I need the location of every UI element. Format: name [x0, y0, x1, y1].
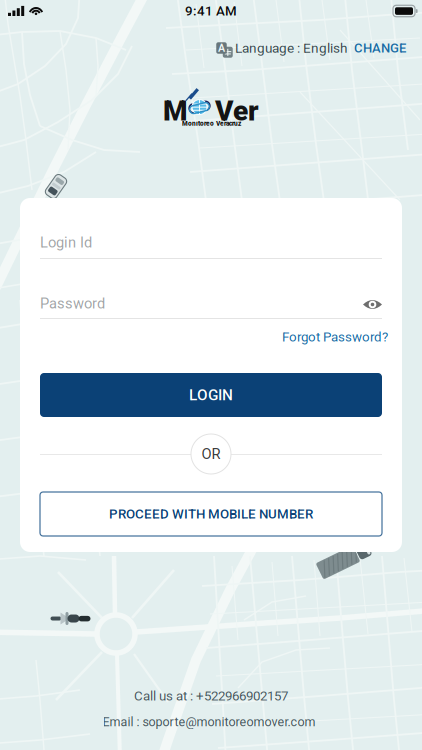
staticText: OR [201, 445, 220, 463]
staticText: CHANGE [354, 40, 406, 56]
staticText: LOGIN [189, 386, 233, 404]
button[interactable]: CHANGE [347, 38, 406, 58]
staticText: Forgot Password? [282, 329, 388, 345]
staticText: Call us at : +522966902157 [134, 688, 288, 704]
staticText: M [163, 95, 188, 127]
staticText: 9:41 AM [185, 3, 237, 19]
staticText: A [218, 42, 225, 54]
button[interactable]: Show password [363, 299, 382, 310]
staticText: Ver [215, 95, 259, 127]
staticText: Language : English [235, 40, 347, 56]
staticText: Login Id [40, 234, 92, 251]
staticText: Monitoreo Veracruz [182, 120, 241, 127]
staticText: PROCEED WITH MOBILE NUMBER [109, 506, 313, 522]
button[interactable]: LOGIN [40, 373, 382, 417]
button[interactable]: Forgot Password? [268, 328, 388, 346]
button[interactable]: PROCEED WITH MOBILE NUMBER [40, 492, 382, 536]
staticText: Email : soporte@monitoreomover.com [102, 715, 315, 729]
staticText: Password [40, 295, 105, 312]
